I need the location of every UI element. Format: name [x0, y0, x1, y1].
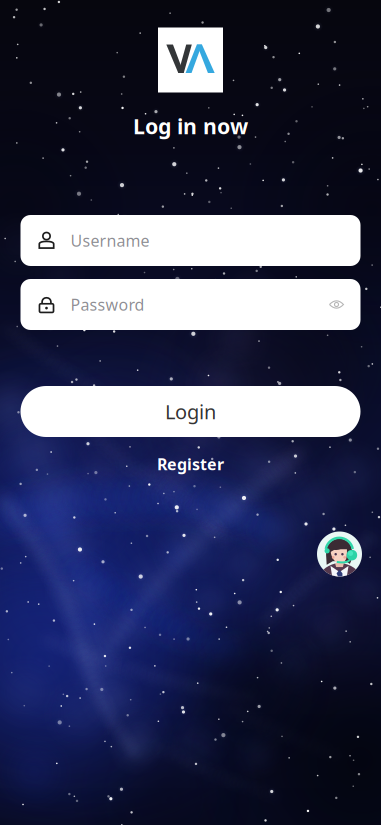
staticText: Register: [157, 453, 224, 475]
staticText: Log in now: [133, 112, 248, 140]
staticText: Username: [70, 230, 149, 251]
button[interactable]: Contact support: [317, 531, 362, 576]
button[interactable]: Show password: [319, 287, 353, 321]
button[interactable]: Register: [147, 448, 234, 480]
button[interactable]: Login: [20, 386, 360, 437]
staticText: Login: [165, 398, 216, 425]
staticText: Password: [70, 294, 144, 315]
